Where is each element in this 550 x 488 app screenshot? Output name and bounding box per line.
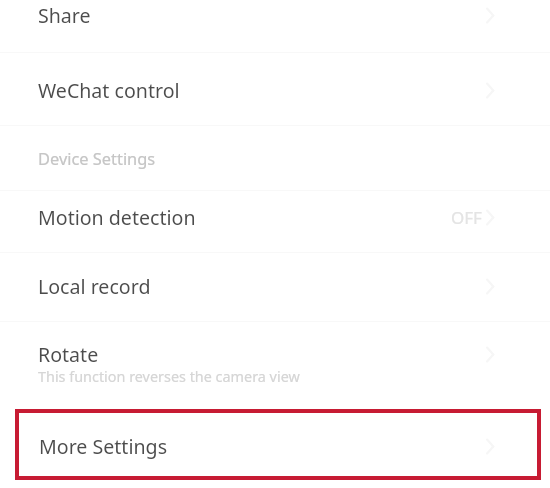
button[interactable]: More Settings	[15, 409, 541, 480]
staticText: Rotate	[38, 341, 99, 368]
staticText: OFF	[451, 206, 482, 229]
staticText: Share	[38, 2, 91, 29]
button[interactable]: Local record	[0, 252, 550, 321]
staticText: Local record	[38, 273, 151, 300]
staticText: WeChat control	[38, 77, 180, 104]
button[interactable]: WeChat control	[0, 52, 550, 125]
button[interactable]: Motion detection	[0, 190, 550, 252]
button[interactable]: Rotate	[0, 321, 550, 392]
staticText: Motion detection	[38, 204, 196, 231]
staticText: This function reverses the camera view	[38, 367, 300, 387]
staticText: More Settings	[39, 433, 168, 460]
staticText: Device Settings	[38, 147, 156, 169]
button[interactable]: Share	[0, 0, 550, 52]
